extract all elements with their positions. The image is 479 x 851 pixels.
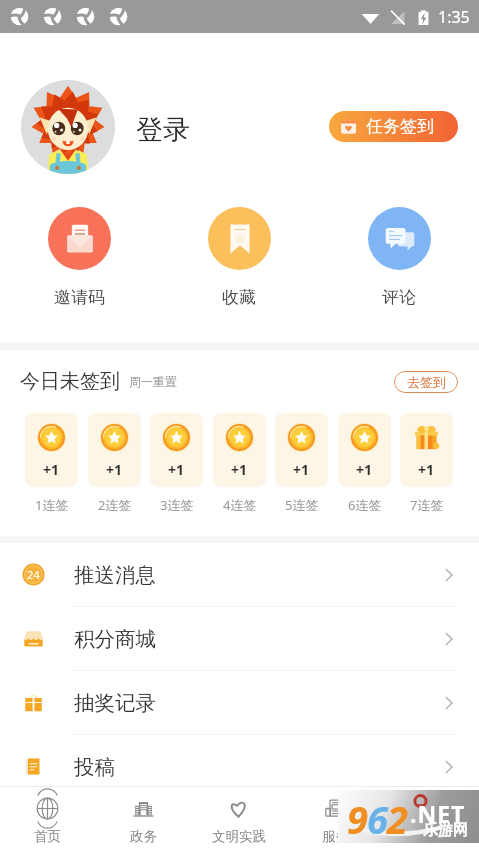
- button[interactable]: 收藏: [159, 194, 319, 308]
- staticText: 乐游网: [423, 821, 468, 840]
- staticText: .NET: [410, 798, 466, 829]
- button[interactable]: 抽奖记录: [0, 671, 479, 735]
- staticText: 收藏: [222, 287, 256, 308]
- staticText: +1: [293, 460, 310, 479]
- staticText: 政务: [130, 828, 157, 845]
- button[interactable]: +1: [338, 413, 391, 514]
- button[interactable]: +1: [275, 413, 328, 514]
- staticText: 文明实践: [212, 828, 266, 845]
- staticText: +1: [356, 460, 373, 479]
- button[interactable]: 投稿: [0, 735, 479, 799]
- staticText: 6连签: [348, 496, 382, 514]
- staticText: +1: [231, 460, 248, 479]
- staticText: 评论: [382, 287, 416, 308]
- staticText: 首页: [34, 828, 61, 845]
- button[interactable]: +1: [88, 413, 141, 514]
- staticText: 邀请码: [54, 287, 105, 308]
- button[interactable]: 邀请码: [0, 194, 159, 308]
- staticText: 4连签: [223, 496, 257, 514]
- staticText: 任务签到: [366, 116, 434, 137]
- button[interactable]: 评论: [319, 194, 479, 308]
- button[interactable]: 24: [0, 543, 479, 607]
- staticText: 服务: [322, 828, 349, 845]
- button[interactable]: 去签到: [394, 371, 458, 393]
- staticText: 7连签: [410, 496, 444, 514]
- staticText: 2: [387, 793, 407, 845]
- staticText: 1:35: [438, 6, 470, 28]
- button[interactable]: 登录: [136, 113, 190, 147]
- staticText: 周一重置: [129, 374, 177, 389]
- staticText: 24: [27, 567, 40, 582]
- button[interactable]: 积分商城: [0, 607, 479, 671]
- staticText: +1: [418, 460, 435, 479]
- staticText: 1连签: [35, 496, 69, 514]
- button[interactable]: 任务签到: [329, 111, 458, 142]
- staticText: +1: [106, 460, 123, 479]
- button[interactable]: 文明实践: [191, 787, 287, 845]
- staticText: 推送消息: [74, 562, 156, 588]
- staticText: 我的: [418, 828, 445, 845]
- staticText: 9: [347, 793, 367, 845]
- staticText: 今日未签到: [20, 369, 120, 394]
- staticText: 投稿: [74, 754, 115, 780]
- staticText: 5连签: [285, 496, 319, 514]
- staticText: 2连签: [98, 496, 132, 514]
- staticText: +1: [168, 460, 185, 479]
- button[interactable]: Avatar: [21, 80, 115, 174]
- staticText: 抽奖记录: [74, 690, 156, 716]
- button[interactable]: +1: [213, 413, 266, 514]
- button[interactable]: +1: [150, 413, 203, 514]
- button[interactable]: 首页: [0, 787, 95, 845]
- staticText: 3连签: [160, 496, 194, 514]
- staticText: 6: [367, 793, 387, 845]
- button[interactable]: +1: [25, 413, 78, 514]
- staticText: 积分商城: [74, 626, 156, 652]
- button[interactable]: 我的: [383, 787, 479, 845]
- staticText: 去签到: [407, 374, 446, 390]
- button[interactable]: 政务: [95, 787, 191, 845]
- staticText: +1: [43, 460, 60, 479]
- button[interactable]: +1: [400, 413, 453, 514]
- button[interactable]: 服务: [287, 787, 383, 845]
